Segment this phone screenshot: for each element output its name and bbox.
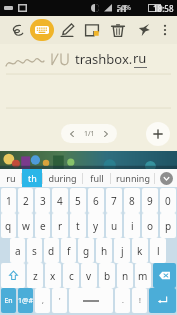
staticText: 9 [147,194,153,208]
staticText: 1@# [18,296,33,306]
staticText: f [67,244,71,258]
button[interactable]: Pen [4,16,29,44]
button[interactable]: l [150,238,166,263]
button[interactable]: d [44,238,59,263]
staticText: d [48,244,55,258]
button[interactable]: b [99,263,115,288]
button[interactable]: Enter [149,288,176,313]
staticText: x [50,269,56,283]
button[interactable]: . [115,288,130,313]
button[interactable]: 1/1 [61,124,117,143]
staticText: j [121,244,124,258]
staticText: p [165,219,172,233]
button[interactable]: 6 [88,188,104,213]
button[interactable]: w [18,213,33,238]
button[interactable]: 2 [18,188,33,213]
button[interactable]: 1 [1,188,16,213]
button[interactable]: i [124,213,140,238]
button[interactable]: g [78,238,94,263]
staticText: s [32,244,37,258]
staticText: ru [133,49,147,67]
staticText: u [111,219,118,233]
staticText: 1 [6,194,12,208]
button[interactable]: h [96,238,112,263]
button[interactable]: 5 [70,188,86,213]
button[interactable]: Keyboard [30,19,54,41]
button[interactable]: th [22,169,42,187]
button[interactable]: Sticky note [79,16,105,44]
button[interactable]: Add page [146,122,170,146]
button[interactable]: 4 [52,188,68,213]
button[interactable]: 9 [142,188,158,213]
staticText: 4 [57,194,63,208]
staticText: th [28,172,37,184]
button[interactable]: a [10,238,25,263]
button[interactable]: ' [52,288,67,313]
staticText: 56% [117,3,131,13]
staticText: o [147,219,154,233]
staticText: 2 [23,194,29,208]
staticText: e [40,219,46,233]
button[interactable]: Delete [105,16,131,44]
button[interactable]: o [142,213,158,238]
button[interactable]: Pin [131,16,157,44]
button[interactable]: q [1,213,16,238]
staticText: h [101,244,108,258]
button[interactable]: c [63,263,79,288]
staticText: n [122,269,129,283]
staticText: 0 [165,194,171,208]
button[interactable]: Backspace [153,263,176,288]
button[interactable]: 1@# [18,288,33,313]
staticText: 5 [75,194,81,208]
button[interactable]: More options [157,16,173,44]
staticText: ! [139,296,141,306]
staticText: k [137,244,143,258]
button[interactable]: s [27,238,42,263]
button[interactable]: 3 [35,188,50,213]
staticText: c [69,269,74,283]
staticText: 7 [111,194,117,208]
button[interactable]: ru [0,169,21,187]
button[interactable]: n [117,263,133,288]
button[interactable]: 0 [160,188,176,213]
staticText: t [76,219,80,233]
button[interactable]: during [43,169,82,187]
button[interactable] [69,288,113,313]
button[interactable]: z [27,263,43,288]
button[interactable]: m [135,263,151,288]
button[interactable]: , [35,288,50,313]
button[interactable]: k [132,238,148,263]
button[interactable]: v [81,263,97,288]
staticText: 1/1 [84,129,95,139]
staticText: . [122,296,124,306]
button[interactable]: j [114,238,130,263]
button[interactable]: More suggestions [155,169,177,187]
button[interactable]: ! [132,288,147,313]
button[interactable]: y [88,213,104,238]
staticText: l [157,244,160,258]
button[interactable]: r [52,213,68,238]
button[interactable]: En [1,288,16,313]
staticText: i [131,219,134,233]
button[interactable]: u [106,213,122,238]
button[interactable]: x [45,263,61,288]
button[interactable]: Highlighter [54,16,79,44]
button[interactable]: f [61,238,76,263]
staticText: a [15,244,21,258]
button[interactable]: full [83,169,110,187]
button[interactable]: running [111,169,154,187]
staticText: running [116,172,150,184]
button[interactable]: 7 [106,188,122,213]
staticText: 3 [40,194,46,208]
button[interactable]: p [160,213,176,238]
staticText: g [83,244,90,258]
staticText: ru [6,172,16,184]
staticText: during [48,172,77,184]
button[interactable]: Shift [1,263,25,288]
button[interactable]: t [70,213,86,238]
staticText: 6 [93,194,99,208]
staticText: m [138,269,148,283]
button[interactable]: 8 [124,188,140,213]
staticText: full [90,172,104,184]
button[interactable]: e [35,213,50,238]
